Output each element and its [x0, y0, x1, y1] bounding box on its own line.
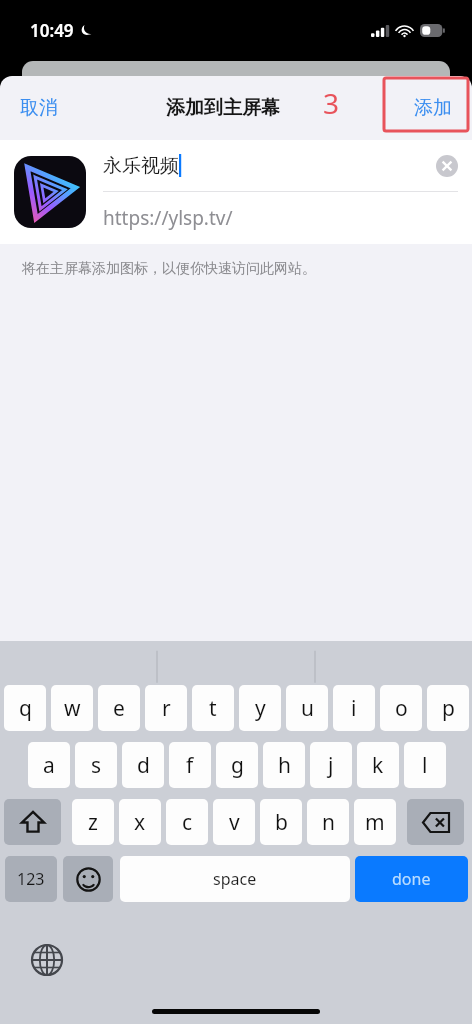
staticText: u — [301, 694, 314, 723]
button[interactable]: App icon — [14, 156, 86, 228]
button[interactable]: x — [119, 799, 161, 845]
button[interactable]: u — [286, 685, 328, 731]
staticText: h — [278, 751, 291, 780]
staticText: p — [442, 694, 455, 723]
staticText: q — [19, 694, 32, 723]
staticText: b — [275, 808, 288, 837]
staticText: w — [64, 694, 81, 723]
button[interactable]: m — [354, 799, 396, 845]
staticText: 将在主屏幕添加图标，以便你快速访问此网站。 — [22, 260, 316, 278]
button[interactable]: 123 — [5, 856, 57, 902]
staticText: g — [231, 751, 244, 780]
button[interactable]: 永乐视频 — [103, 140, 458, 191]
button[interactable]: c — [166, 799, 208, 845]
button[interactable]: Switch keyboard — [30, 943, 64, 977]
button[interactable]: w — [51, 685, 93, 731]
button[interactable]: Shift — [4, 799, 61, 845]
button[interactable]: q — [4, 685, 46, 731]
staticText: done — [392, 868, 431, 890]
button[interactable]: 添加 — [394, 84, 472, 132]
button[interactable]: p — [427, 685, 469, 731]
button[interactable]: Backspace — [407, 799, 464, 845]
button[interactable]: d — [122, 742, 164, 788]
button[interactable]: s — [75, 742, 117, 788]
staticText: a — [43, 751, 55, 780]
staticText: i — [351, 694, 357, 723]
staticText: k — [372, 751, 384, 780]
staticText: m — [365, 808, 385, 837]
button[interactable]: Emoji — [63, 856, 113, 902]
button[interactable]: z — [72, 799, 114, 845]
button[interactable]: n — [307, 799, 349, 845]
staticText: 取消 — [20, 96, 58, 120]
button[interactable]: done — [355, 856, 468, 902]
staticText: 3 — [323, 84, 340, 122]
staticText: 永乐视频 — [103, 154, 179, 178]
button[interactable]: i — [333, 685, 375, 731]
staticText: v — [229, 808, 240, 837]
button[interactable]: f — [169, 742, 211, 788]
staticText: e — [113, 694, 125, 723]
button[interactable]: r — [145, 685, 187, 731]
button[interactable]: o — [380, 685, 422, 731]
button[interactable]: l — [404, 742, 446, 788]
button[interactable]: Clear text — [436, 155, 458, 177]
staticText: s — [91, 751, 102, 780]
button[interactable]: 取消 — [0, 84, 78, 132]
staticText: l — [422, 751, 428, 780]
staticText: c — [182, 808, 193, 837]
button[interactable]: j — [310, 742, 352, 788]
staticText: space — [213, 868, 257, 890]
staticText: r — [162, 694, 171, 723]
button[interactable]: a — [28, 742, 70, 788]
button[interactable]: g — [216, 742, 258, 788]
staticText: z — [88, 808, 98, 837]
staticText: x — [134, 808, 146, 837]
staticText: https://ylsp.tv/ — [103, 205, 233, 231]
button[interactable]: e — [98, 685, 140, 731]
staticText: t — [209, 694, 217, 723]
button[interactable]: k — [357, 742, 399, 788]
staticText: y — [255, 694, 266, 723]
staticText: f — [186, 751, 194, 780]
button[interactable]: v — [213, 799, 255, 845]
staticText: 123 — [17, 868, 45, 890]
staticText: 添加到主屏幕 — [166, 96, 280, 120]
button[interactable]: b — [260, 799, 302, 845]
staticText: d — [137, 751, 150, 780]
button[interactable]: h — [263, 742, 305, 788]
button[interactable]: y — [239, 685, 281, 731]
button[interactable]: space — [120, 856, 350, 902]
staticText: 10:49 — [30, 19, 74, 42]
staticText: j — [328, 751, 334, 780]
staticText: n — [322, 808, 335, 837]
button[interactable]: https://ylsp.tv/ — [103, 192, 458, 244]
staticText: o — [395, 694, 408, 723]
staticText: 添加 — [414, 96, 452, 120]
button[interactable]: t — [192, 685, 234, 731]
